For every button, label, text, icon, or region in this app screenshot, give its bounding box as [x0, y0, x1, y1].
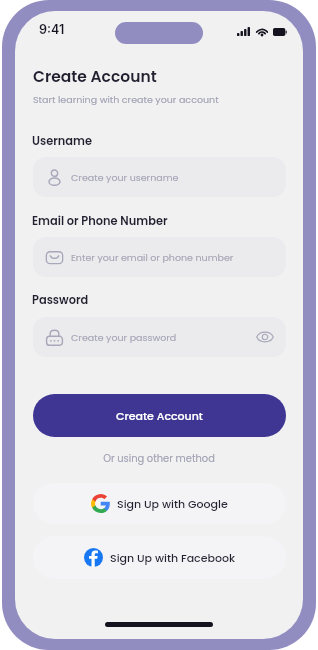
button[interactable]: Create your password — [33, 317, 286, 357]
staticText: Create your password — [71, 331, 177, 344]
staticText: Email or Phone Number — [32, 213, 168, 229]
staticText: Enter your email or phone number — [71, 251, 234, 264]
staticText: Or using other method — [15, 452, 303, 466]
staticText: Password — [32, 292, 89, 308]
button[interactable]: Show password — [255, 327, 275, 347]
button[interactable]: Create Account — [33, 394, 286, 437]
button[interactable]: Sign Up with Facebook — [33, 536, 286, 579]
staticText: Create Account — [33, 66, 157, 88]
staticText: 9:41 — [39, 22, 65, 37]
button[interactable]: Sign Up with Google — [33, 483, 286, 524]
staticText: Username — [32, 133, 92, 149]
staticText: Create your username — [71, 171, 179, 184]
staticText: Create Account — [116, 408, 203, 423]
staticText: Sign Up with Google — [117, 496, 228, 511]
staticText: Start learning with create your account — [33, 93, 219, 106]
button[interactable]: Enter your email or phone number — [33, 237, 286, 277]
button[interactable]: Create your username — [33, 157, 286, 197]
staticText: Sign Up with Facebook — [110, 550, 236, 565]
